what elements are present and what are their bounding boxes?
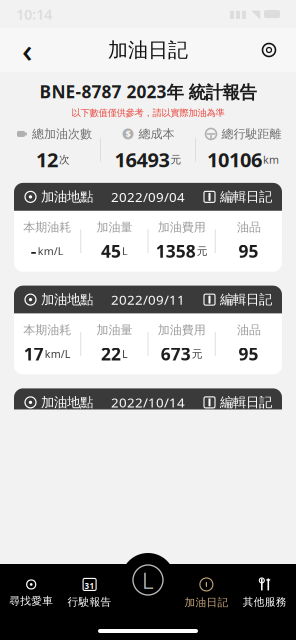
staticText: 油品 xyxy=(237,220,261,235)
staticText: 673 xyxy=(161,342,191,365)
staticText: 尋找愛車 xyxy=(9,594,53,607)
staticText: 加油費用 xyxy=(158,631,206,640)
button[interactable]: 加油地點 xyxy=(14,286,282,374)
button[interactable]: 31 xyxy=(60,571,119,614)
staticText: 95 xyxy=(238,342,258,365)
staticText: $ xyxy=(125,128,130,140)
button[interactable]: 加油地點 xyxy=(14,388,282,477)
staticText: 加油日記 xyxy=(108,38,188,62)
staticText: 加油費用 xyxy=(158,220,206,235)
staticText: 加油地點 xyxy=(41,189,93,205)
staticText: 加油量 xyxy=(96,323,132,337)
staticText: 加油費用 xyxy=(158,323,206,337)
staticText: 17 xyxy=(24,548,44,571)
staticText xyxy=(146,595,149,610)
staticText: 加油地點 xyxy=(41,291,93,308)
staticText: 總成本 xyxy=(138,127,174,141)
staticText: 元 xyxy=(197,553,208,566)
button[interactable]: 加油地點 xyxy=(14,183,282,272)
button[interactable]: 其他服務 xyxy=(236,571,294,614)
staticText: 1358 xyxy=(156,240,196,263)
staticText: 總加油次數 xyxy=(32,127,92,141)
staticText: 本期油耗 xyxy=(23,220,71,235)
staticText: 17 xyxy=(24,342,44,365)
staticText: 95 xyxy=(238,548,258,571)
button[interactable]: 加油地點 xyxy=(14,594,282,640)
staticText: 2022/10/14 xyxy=(111,393,185,411)
staticText: L xyxy=(122,552,128,566)
staticText: km/L xyxy=(45,552,71,566)
staticText: 2022/09/11 xyxy=(111,291,185,308)
staticText: km/L xyxy=(38,244,64,258)
staticText: 16493 xyxy=(114,146,169,173)
staticText: 10106 xyxy=(207,146,262,173)
button[interactable]: 加油日記 xyxy=(177,571,236,615)
button[interactable]: 加油地點 xyxy=(14,491,282,580)
staticText: 加油地點 xyxy=(41,600,93,616)
staticText: 12 xyxy=(36,146,58,173)
staticText: km xyxy=(263,152,279,167)
staticText: 以下數值僅供參考，請以實際加油為準 xyxy=(71,107,224,119)
button[interactable]: Lexus home xyxy=(131,563,165,597)
staticText: 1040 xyxy=(156,548,196,571)
staticText: ‹ xyxy=(22,29,32,71)
staticText: 其他服務 xyxy=(243,595,287,608)
staticText: 加油地點 xyxy=(41,394,93,411)
staticText: 元 xyxy=(170,153,181,166)
staticText: 元 xyxy=(197,245,208,258)
staticText: 本期油耗 xyxy=(23,323,71,337)
staticText: ◥ xyxy=(251,7,260,21)
staticText: 10:14 xyxy=(16,4,52,24)
staticText: 次 xyxy=(59,153,70,166)
staticText: 元 xyxy=(192,347,203,360)
staticText: L xyxy=(142,565,154,595)
staticText: 油品 xyxy=(237,323,261,337)
staticText: 行駛報告 xyxy=(68,595,112,608)
button[interactable]: Settings xyxy=(252,33,286,67)
staticText: 31 xyxy=(85,581,95,591)
staticText: 加油日記 xyxy=(184,596,228,609)
staticText: ▮▮▮ xyxy=(229,8,247,20)
staticText: km/L xyxy=(45,347,71,361)
staticText: 總行駛距離 xyxy=(221,127,281,141)
staticText: - xyxy=(31,240,37,263)
staticText: 編輯日記 xyxy=(220,600,272,616)
staticText: 45 xyxy=(101,240,121,263)
staticText: BNE-8787 2023年 統計報告 xyxy=(39,80,256,103)
staticText: 34 xyxy=(101,548,121,571)
staticText: 編輯日記 xyxy=(220,291,272,308)
staticText: L xyxy=(122,244,128,258)
staticText: L xyxy=(122,347,128,361)
staticText: 加油量 xyxy=(96,220,132,235)
button[interactable]: Back xyxy=(10,33,44,67)
staticText: 22 xyxy=(101,342,121,365)
staticText: 加油量 xyxy=(96,631,132,640)
staticText: 95 xyxy=(238,240,258,263)
staticText: 編輯日記 xyxy=(220,394,272,411)
staticText: 編輯日記 xyxy=(220,189,272,205)
button[interactable]: 尋找愛車 xyxy=(2,572,60,613)
staticText: 2022/09/04 xyxy=(111,188,185,206)
